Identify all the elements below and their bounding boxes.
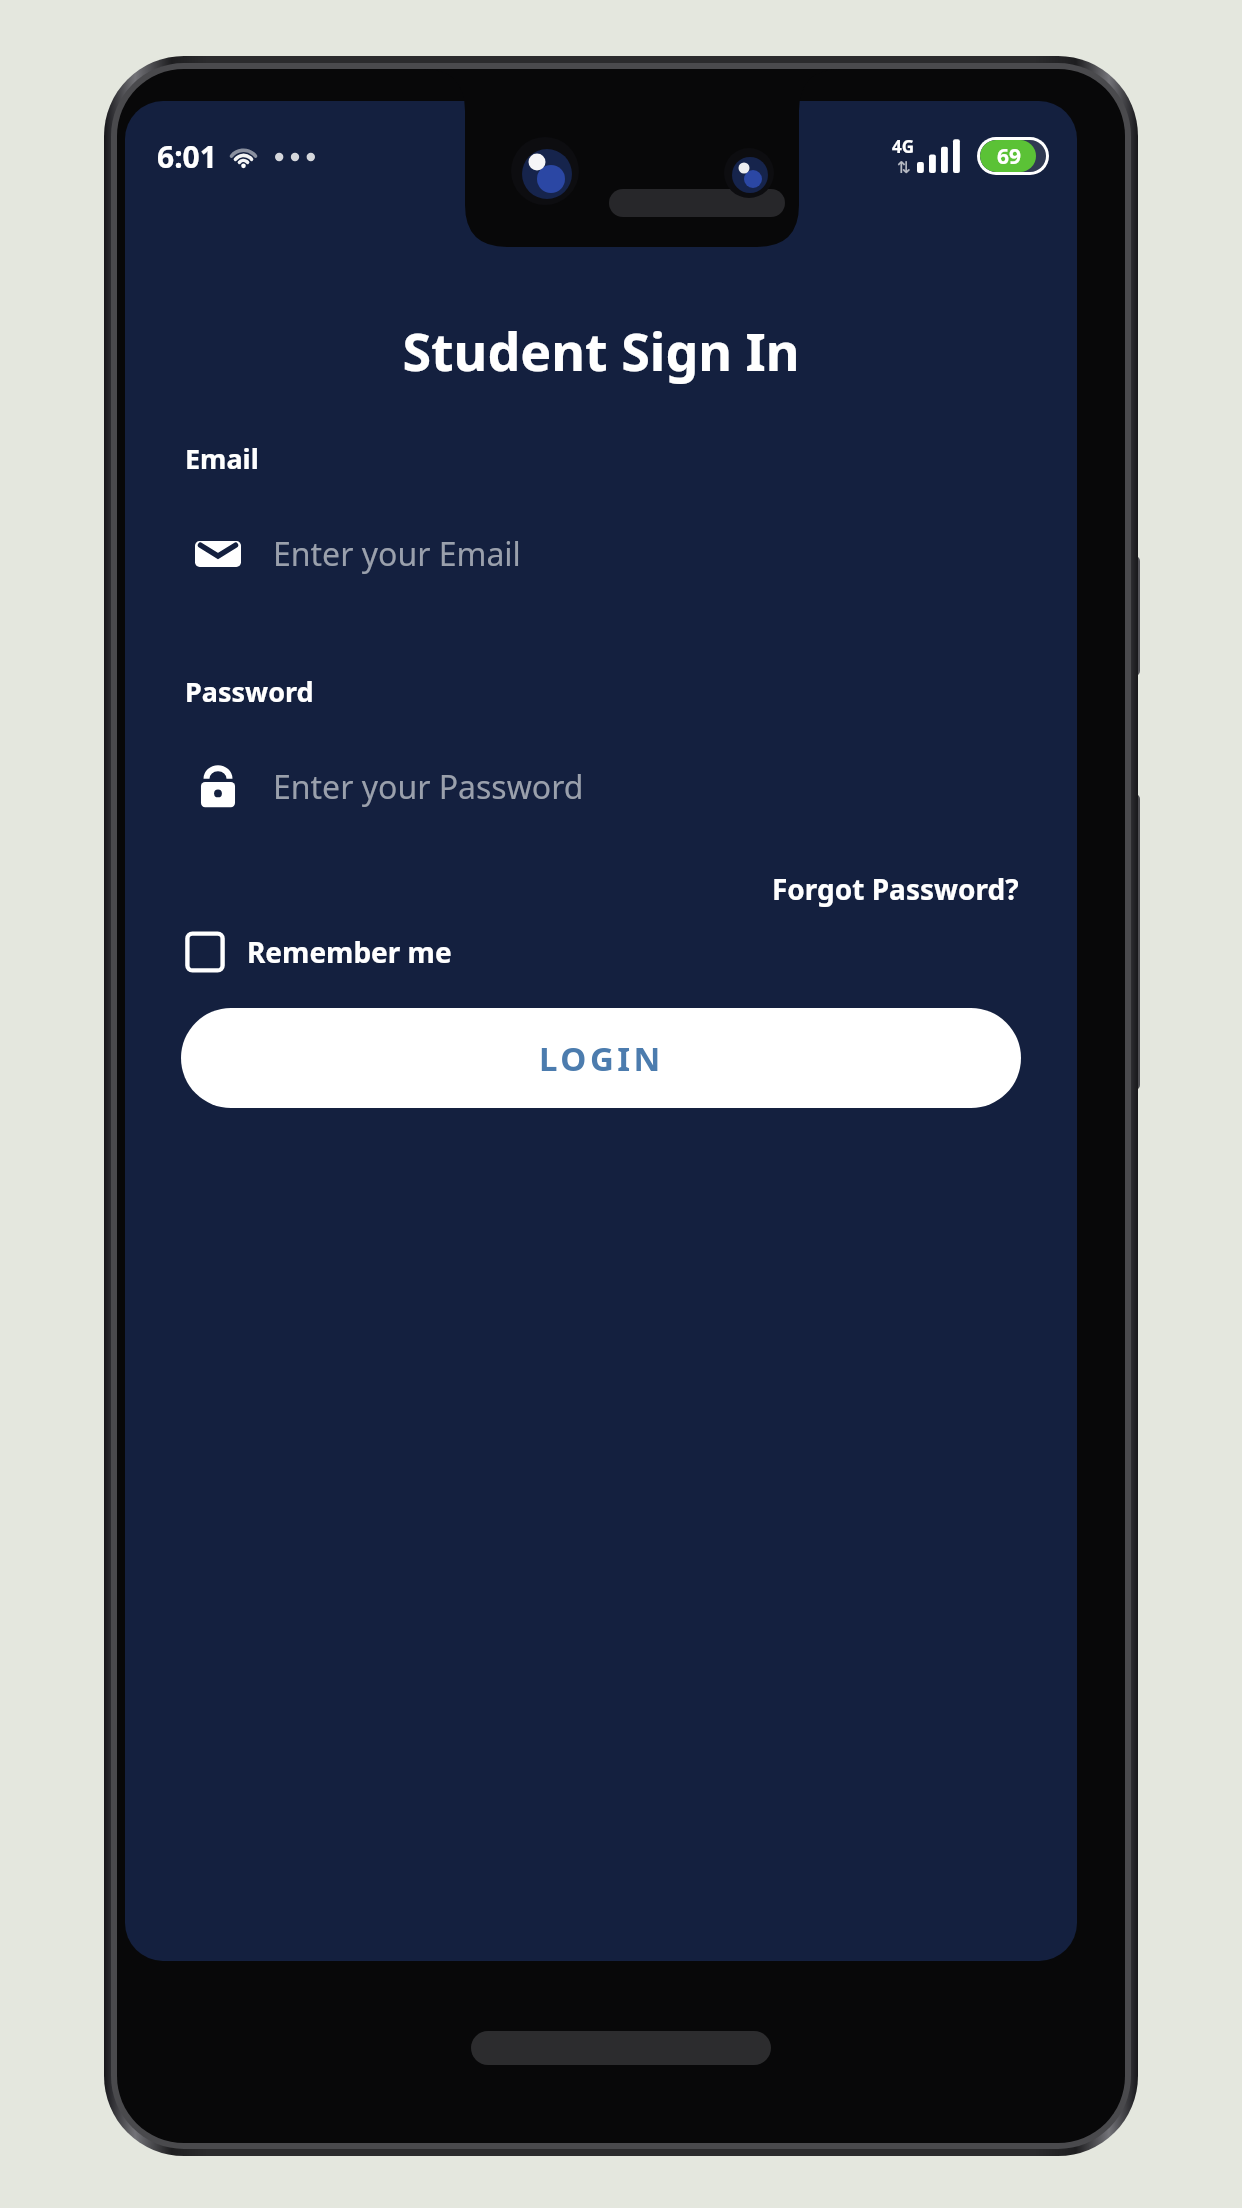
staticText: ⇅ bbox=[897, 158, 911, 177]
staticText: Student Sign In bbox=[125, 315, 1077, 386]
button[interactable]: LOGIN bbox=[181, 1008, 1021, 1108]
staticText: Email bbox=[185, 440, 259, 477]
other: Password bbox=[195, 764, 241, 810]
button[interactable]: Forgot Password? bbox=[772, 866, 1077, 912]
staticText: Password bbox=[185, 673, 314, 710]
staticText: Enter your Password bbox=[273, 765, 584, 809]
staticText: 4G bbox=[892, 135, 915, 158]
button[interactable]: Email bbox=[125, 523, 1077, 585]
button[interactable]: Password bbox=[125, 756, 1077, 818]
staticText: 6:01 bbox=[157, 136, 217, 177]
staticText: Enter your Email bbox=[273, 532, 521, 576]
staticText: LOGIN bbox=[539, 1036, 664, 1081]
staticText: Remember me bbox=[247, 933, 452, 971]
staticText: Forgot Password? bbox=[772, 870, 1019, 908]
button[interactable]: Remember me bbox=[179, 924, 458, 980]
staticText: 69 bbox=[980, 142, 1042, 171]
other: Email bbox=[195, 531, 241, 577]
